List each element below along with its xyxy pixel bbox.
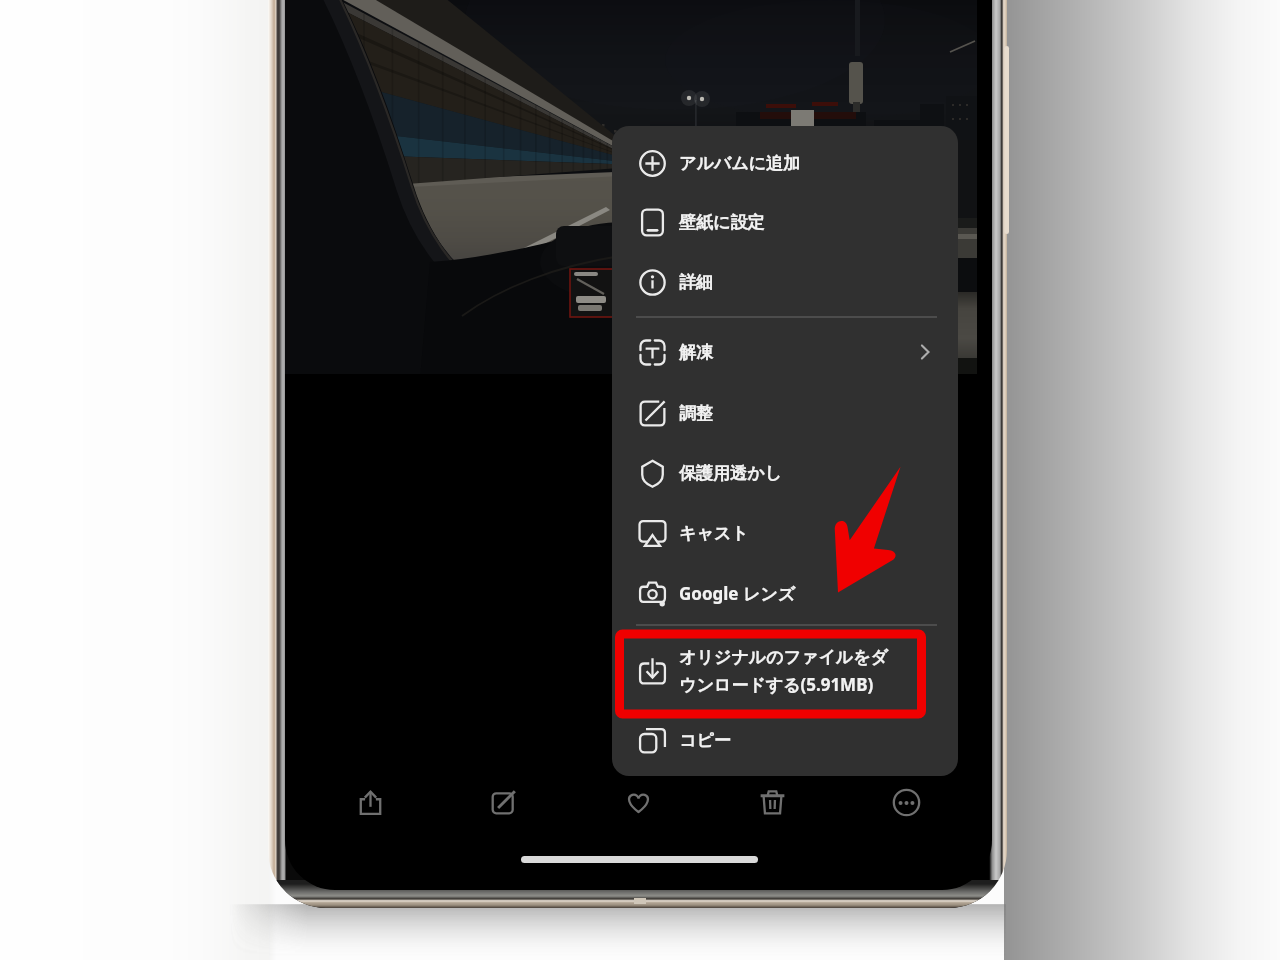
button[interactable]: アルバムに追加 xyxy=(612,135,958,191)
button[interactable]: 保護用透かし xyxy=(612,445,958,501)
staticText: 解凍 xyxy=(679,342,713,363)
staticText: キャスト xyxy=(679,523,749,544)
staticText: Google レンズ xyxy=(679,582,796,605)
staticText: オリジナルのファイルをダ ウンロードする(5.91MB) xyxy=(679,647,888,696)
staticText: 詳細 xyxy=(679,272,713,293)
button[interactable]: キャスト xyxy=(612,505,958,561)
button[interactable]: More options xyxy=(878,774,934,830)
button[interactable]: Share xyxy=(342,774,398,830)
staticText: アルバムに追加 xyxy=(679,153,800,174)
button[interactable]: 詳細 xyxy=(612,254,958,310)
button[interactable]: コピー xyxy=(612,712,958,768)
button[interactable]: 調整 xyxy=(612,385,958,441)
button[interactable]: 壁紙に設定 xyxy=(612,194,958,250)
button[interactable]: 解凍 xyxy=(612,324,958,380)
button[interactable]: Delete xyxy=(744,774,800,830)
staticText: 壁紙に設定 xyxy=(679,212,765,233)
button[interactable]: Google レンズ xyxy=(612,565,958,621)
button[interactable]: Favourite xyxy=(610,774,666,830)
staticText: コピー xyxy=(679,730,731,751)
staticText: 保護用透かし xyxy=(679,463,782,484)
staticText: 調整 xyxy=(679,403,713,424)
button[interactable]: Edit xyxy=(475,774,531,830)
button[interactable]: オリジナルのファイルをダ ウンロードする(5.91MB) xyxy=(612,626,958,714)
